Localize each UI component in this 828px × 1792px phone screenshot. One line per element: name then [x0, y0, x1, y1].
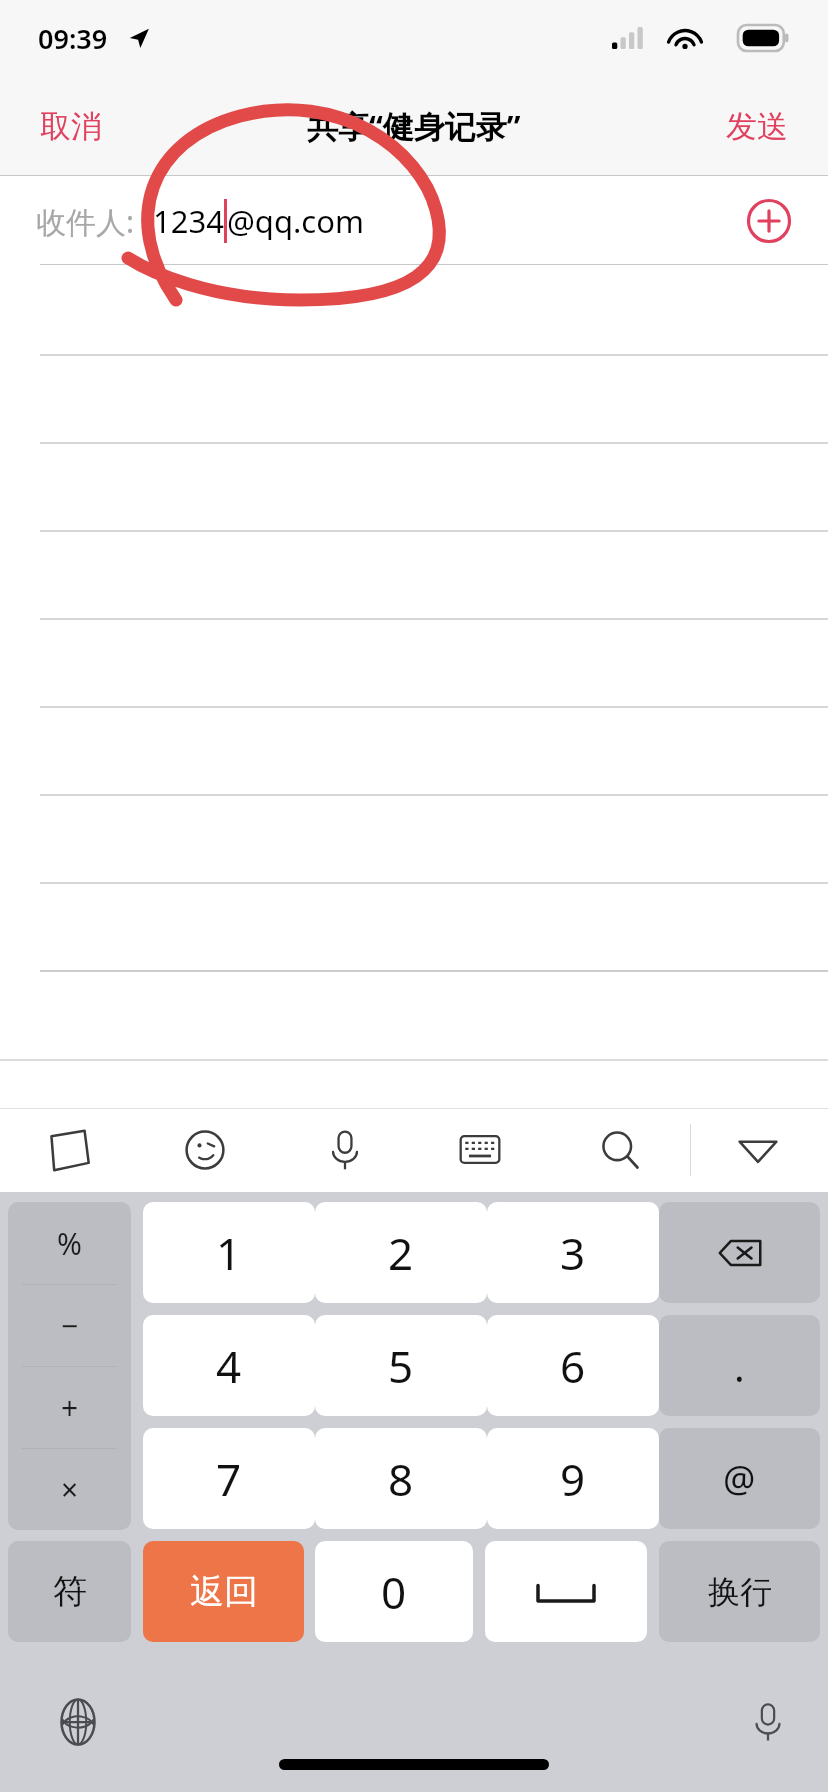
button[interactable]: × — [8, 1449, 131, 1530]
staticText: 9 — [560, 1449, 586, 1509]
button[interactable]: 6 — [487, 1315, 659, 1416]
button[interactable]: % — [8, 1202, 131, 1284]
button[interactable]: 1 — [143, 1202, 315, 1303]
staticText: 返回 — [190, 1570, 258, 1613]
staticText: 8 — [388, 1449, 414, 1509]
staticText: % — [57, 1223, 82, 1264]
staticText: 2 — [388, 1223, 414, 1283]
staticText: 1 — [216, 1223, 242, 1283]
button[interactable]: . — [659, 1315, 820, 1416]
staticText: × — [61, 1469, 79, 1510]
staticText: 取消 — [40, 107, 102, 146]
button[interactable]: 5 — [315, 1315, 487, 1416]
button[interactable]: 0 — [315, 1541, 473, 1642]
button[interactable]: 发送 — [710, 99, 804, 154]
button[interactable]: 返回 — [143, 1541, 304, 1642]
button[interactable]: Add recipient — [740, 192, 798, 250]
button[interactable]: 2 — [315, 1202, 487, 1303]
staticText: 7 — [216, 1449, 242, 1509]
button[interactable]: 4 — [143, 1315, 315, 1416]
staticText: 1234 — [153, 200, 224, 242]
staticText: 发送 — [726, 107, 788, 146]
button[interactable]: + — [8, 1367, 131, 1448]
button[interactable]: 符 — [8, 1541, 131, 1642]
button[interactable]: 收件人: — [0, 177, 828, 265]
button[interactable]: 取消 — [24, 99, 118, 154]
staticText: 0 — [381, 1562, 407, 1622]
button[interactable]: @ — [659, 1428, 820, 1529]
button[interactable]: 3 — [487, 1202, 659, 1303]
button[interactable]: Keyboard — [442, 1108, 518, 1192]
staticText: . — [734, 1339, 745, 1393]
staticText: 符 — [53, 1570, 87, 1613]
staticText: 6 — [560, 1336, 586, 1396]
button[interactable]: Voice input — [730, 1684, 806, 1760]
button[interactable]: Sogou input — [30, 1108, 106, 1192]
staticText: 5 — [388, 1336, 414, 1396]
button[interactable]: Emoji — [167, 1108, 243, 1192]
staticText: @qq.com — [227, 200, 364, 242]
button[interactable]: − — [8, 1285, 131, 1366]
staticText: @ — [723, 1454, 756, 1503]
staticText: − — [61, 1305, 79, 1346]
button[interactable]: Voice input — [307, 1108, 383, 1192]
staticText: 09:39 — [38, 20, 108, 57]
button[interactable]: Search — [582, 1108, 658, 1192]
button[interactable]: Space — [485, 1541, 647, 1642]
staticText: 4 — [216, 1336, 242, 1396]
button[interactable]: 9 — [487, 1428, 659, 1529]
button[interactable]: 换行 — [659, 1541, 820, 1642]
staticText: 共享“健身记录” — [307, 105, 521, 147]
button[interactable]: Delete — [659, 1202, 820, 1303]
staticText: 收件人: — [36, 201, 135, 242]
staticText: 3 — [560, 1223, 586, 1283]
staticText: 换行 — [708, 1572, 772, 1612]
button[interactable]: 8 — [315, 1428, 487, 1529]
button[interactable]: 7 — [143, 1428, 315, 1529]
staticText: + — [61, 1387, 79, 1428]
button[interactable]: Switch language — [40, 1684, 116, 1760]
button[interactable]: Hide keyboard — [720, 1108, 796, 1192]
